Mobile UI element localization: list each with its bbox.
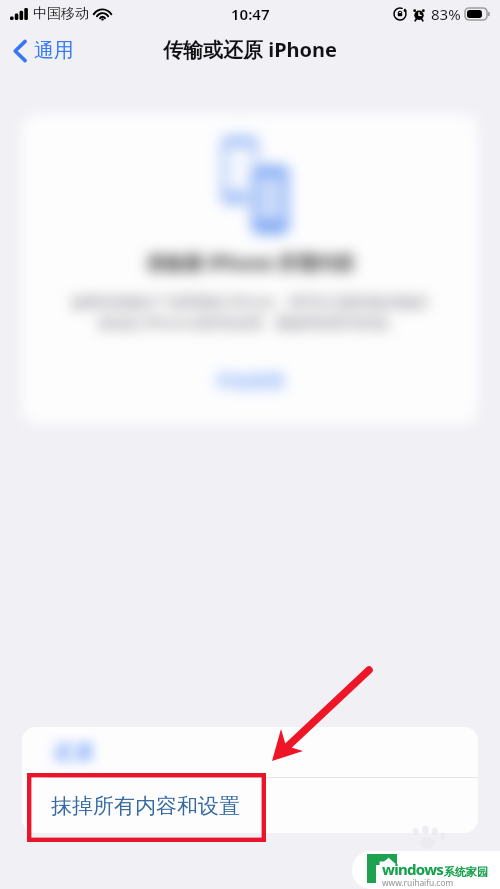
staticText: 开始使用 [216, 371, 284, 392]
staticText: 通用 [34, 38, 74, 63]
other: Annotation arrow [0, 0, 500, 889]
staticText: 中国移动 [33, 5, 89, 23]
staticText: 如果你准备好了设置新的 iPhone，则可以为新设备准备好 来自此 iPhone… [71, 292, 429, 333]
staticText: 准备新 iPhone 所需内容 [146, 250, 355, 276]
button[interactable]: Back to 通用 [12, 38, 74, 63]
staticText: 抹掉所有内容和设置 [51, 793, 240, 819]
staticText: 83% [431, 4, 461, 24]
staticText: www.ruihaifu.com [382, 877, 454, 889]
button[interactable]: 开始使用 [202, 365, 298, 398]
staticText: 系统家园 [444, 865, 488, 879]
button[interactable]: 抹掉所有内容和设置 [22, 778, 478, 833]
button[interactable]: 还原 [22, 727, 478, 777]
staticText: windows [382, 859, 444, 879]
staticText: 传输或还原 iPhone [163, 36, 338, 63]
staticText: 10:47 [231, 4, 270, 24]
button[interactable]: 准备新 iPhone 所需内容 [22, 114, 478, 424]
staticText: 还原 [53, 739, 95, 765]
